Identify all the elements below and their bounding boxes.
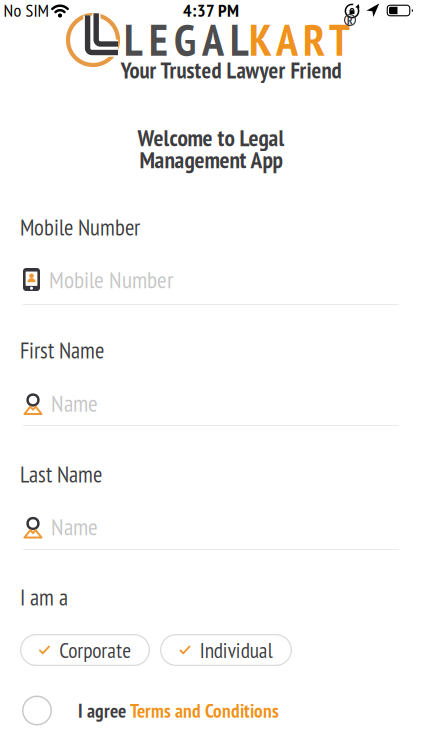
staticText: Management App <box>139 144 282 175</box>
staticText: I am a <box>20 582 68 612</box>
staticText: First Name <box>20 335 104 365</box>
staticText: Terms and Conditions <box>130 698 279 723</box>
button[interactable]: Corporate <box>20 634 150 666</box>
staticText: Name <box>51 388 98 418</box>
button[interactable]: Terms and Conditions <box>130 698 279 723</box>
staticText: Welcome to Legal <box>137 122 284 153</box>
staticText: Name <box>51 511 98 542</box>
staticText: Mobile Number <box>49 264 173 295</box>
staticText: Last Name <box>20 459 102 489</box>
staticText: No SIM <box>3 0 48 22</box>
staticText: Your Trusted Lawyer Friend <box>120 55 341 85</box>
button[interactable]: I agree to Terms and Conditions <box>22 695 52 725</box>
staticText: 4:37 PM <box>183 0 239 22</box>
button[interactable]: Name <box>23 514 399 539</box>
staticText: Corporate <box>59 636 131 664</box>
staticText: I agree <box>78 698 126 723</box>
button[interactable]: Name <box>23 390 399 415</box>
button[interactable]: Individual <box>160 634 292 666</box>
staticText: R <box>347 13 353 28</box>
staticText: KART <box>249 11 350 68</box>
staticText: Individual <box>200 636 273 664</box>
button[interactable]: Mobile Number <box>23 267 399 292</box>
staticText: LEGAL <box>124 11 249 68</box>
staticText: Mobile Number <box>20 212 140 242</box>
